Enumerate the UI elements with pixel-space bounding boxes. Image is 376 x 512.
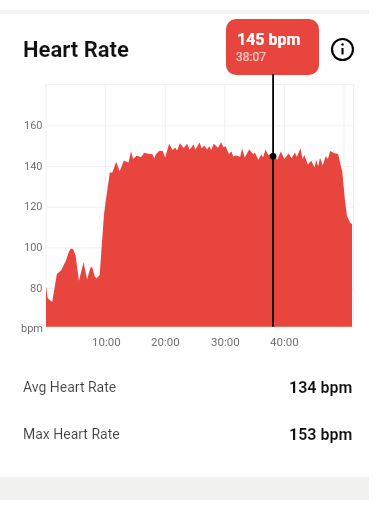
staticText: 80	[30, 282, 43, 295]
staticText: 140	[24, 160, 43, 173]
staticText: 40:00	[270, 335, 299, 348]
staticText: 160	[24, 119, 43, 132]
staticText: bpm	[21, 322, 43, 335]
staticText: 10:00	[92, 335, 121, 348]
button[interactable]: Avg Heart Rate	[0, 364, 376, 410]
staticText: 100	[24, 241, 43, 254]
staticText: Avg Heart Rate	[23, 379, 117, 395]
staticText: Max Heart Rate	[23, 426, 120, 442]
staticText: 134 bpm	[289, 378, 353, 397]
button[interactable]: Info	[328, 35, 356, 63]
button[interactable]: Max Heart Rate	[0, 411, 376, 457]
staticText: 120	[24, 200, 43, 213]
staticText: 153 bpm	[289, 425, 353, 444]
staticText: 20:00	[151, 335, 180, 348]
button[interactable]: 145 bpm	[226, 19, 319, 75]
staticText: 145 bpm	[237, 30, 301, 49]
staticText: Heart Rate	[23, 37, 129, 63]
staticText: 38:07	[236, 50, 266, 64]
staticText: 30:00	[211, 335, 240, 348]
